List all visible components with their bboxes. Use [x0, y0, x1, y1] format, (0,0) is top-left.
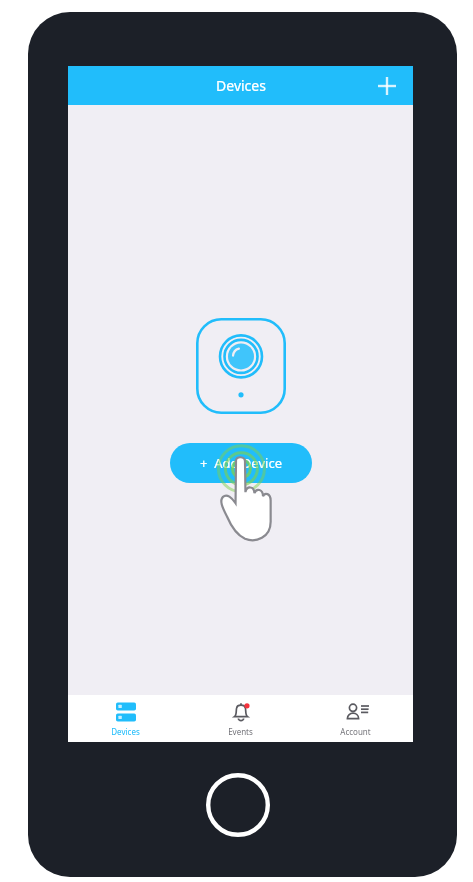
button[interactable]: Home — [206, 773, 270, 837]
staticText: Events — [228, 726, 253, 737]
staticText: Account — [340, 726, 371, 737]
button[interactable]: Account — [298, 695, 413, 742]
button[interactable]: Add — [373, 72, 401, 100]
staticText: Devices — [111, 726, 140, 737]
button[interactable]: Devices — [68, 695, 183, 742]
staticText: Devices — [216, 76, 266, 95]
staticText: + Add Device — [200, 454, 282, 472]
button[interactable]: + Add Device — [170, 443, 312, 483]
button[interactable]: Events — [183, 695, 298, 742]
